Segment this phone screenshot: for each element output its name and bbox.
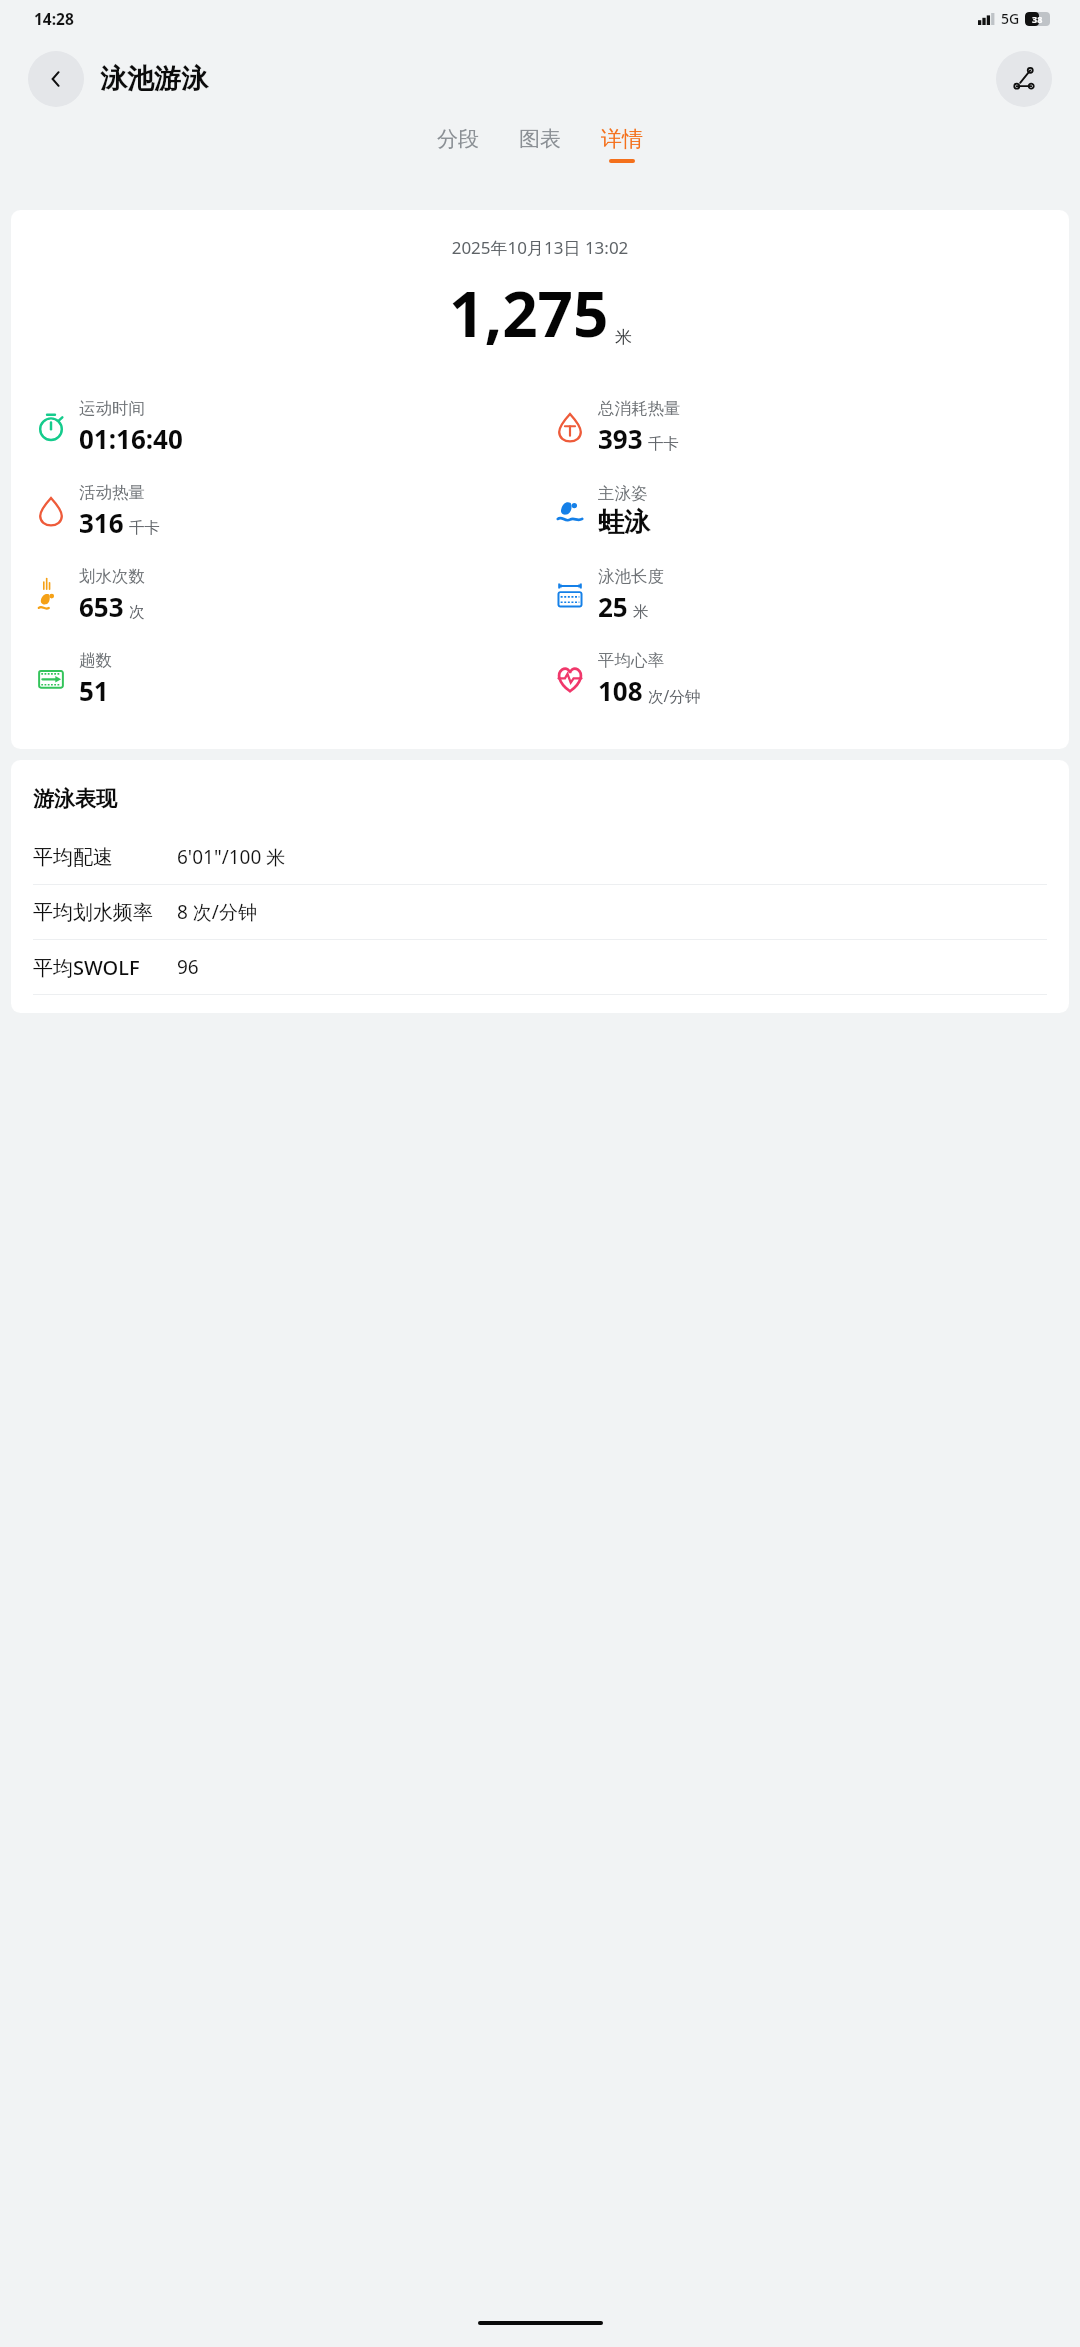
staticText: 米 (633, 602, 649, 622)
staticText: 2025年10月13日 13:02 (11, 236, 1069, 259)
staticText: 6'01"/100 米 (177, 844, 286, 870)
staticText: 8 次/分钟 (177, 899, 257, 925)
staticText: 泳池游泳 (100, 62, 208, 96)
button[interactable]: Share (996, 51, 1052, 107)
button[interactable]: 趟数 (33, 637, 112, 721)
staticText: 主泳姿 (598, 483, 648, 504)
staticText: 千卡 (648, 434, 679, 454)
staticText: 详情 (601, 126, 643, 152)
staticText: 总消耗热量 (598, 398, 681, 419)
staticText: 米 (615, 327, 632, 348)
button[interactable]: 活动热量 (33, 469, 160, 553)
staticText: 108 (598, 673, 643, 708)
staticText: 653 (79, 589, 124, 624)
staticText: 活动热量 (79, 482, 145, 503)
staticText: 平均划水频率 (33, 900, 165, 925)
staticText: 5G (1001, 9, 1020, 28)
button[interactable]: Back (28, 51, 84, 107)
staticText: 蛙泳 (598, 506, 650, 539)
button[interactable]: 总消耗热量 (552, 385, 681, 469)
staticText: 393 (598, 421, 643, 456)
staticText: 平均配速 (33, 845, 165, 870)
staticText: 千卡 (129, 518, 160, 538)
staticText: 25 (598, 589, 628, 624)
button[interactable]: 泳池长度 (552, 553, 664, 637)
button[interactable]: 平均SWOLF (11, 940, 1069, 994)
staticText: 平均SWOLF (33, 954, 165, 981)
staticText: 运动时间 (79, 398, 145, 419)
staticText: 14:28 (34, 8, 74, 29)
staticText: 划水次数 (79, 566, 145, 587)
staticText: 01:16:40 (79, 421, 183, 456)
staticText: 38 (1032, 13, 1043, 25)
staticText: 游泳表现 (33, 786, 117, 812)
button[interactable]: 分段 (429, 122, 487, 163)
button[interactable]: 图表 (511, 122, 569, 163)
staticText: 图表 (519, 126, 561, 152)
staticText: 次 (129, 602, 145, 622)
button[interactable]: 详情 (593, 122, 651, 167)
staticText: 316 (79, 505, 124, 540)
button[interactable]: 平均心率 (552, 637, 701, 721)
staticText: 1,275 (449, 271, 609, 355)
staticText: 平均心率 (598, 650, 664, 671)
staticText: 次/分钟 (648, 685, 701, 706)
staticText: 96 (177, 954, 199, 980)
staticText: 51 (79, 673, 109, 708)
button[interactable]: 运动时间 (33, 385, 183, 469)
button[interactable]: 平均配速 (11, 830, 1069, 884)
staticText: 泳池长度 (598, 566, 664, 587)
button[interactable]: 平均划水频率 (11, 885, 1069, 939)
button[interactable]: 划水次数 (33, 553, 145, 637)
staticText: 分段 (437, 126, 479, 152)
button[interactable]: 主泳姿 (552, 469, 650, 553)
staticText: 趟数 (79, 650, 112, 671)
